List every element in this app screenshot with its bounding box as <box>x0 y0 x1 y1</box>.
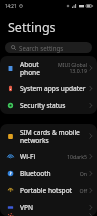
button[interactable]: SIM cards & mobile networks <box>0 124 97 148</box>
staticText: VPN <box>20 203 33 212</box>
staticText: SIM cards & mobile networks <box>20 128 80 145</box>
staticText: MIUI Global 13.0.19 <box>57 61 87 75</box>
staticText: Portable hotspot <box>20 186 72 195</box>
staticText: 10dark5 <box>67 153 87 160</box>
button[interactable]: System apps updater <box>0 80 97 97</box>
staticText: Security status <box>20 101 66 110</box>
button[interactable]: Portable hotspot <box>0 182 97 199</box>
staticText: Wi-Fi <box>20 152 36 161</box>
staticText: System apps updater <box>20 84 86 93</box>
button[interactable]: VPN <box>0 199 97 216</box>
staticText: Bluetooth <box>20 169 51 178</box>
staticText: Settings <box>8 19 56 36</box>
staticText: 14:21 <box>5 3 17 9</box>
staticText: Search settings <box>19 44 64 52</box>
staticText: Off <box>79 187 87 194</box>
button[interactable]: About phone <box>0 56 97 80</box>
button[interactable]: Search settings <box>5 42 92 53</box>
button[interactable]: Bluetooth <box>0 165 97 182</box>
staticText: About phone <box>20 60 40 77</box>
staticText: On <box>79 170 87 177</box>
button[interactable]: Wi-Fi <box>0 148 97 165</box>
button[interactable]: Security status <box>0 97 97 114</box>
